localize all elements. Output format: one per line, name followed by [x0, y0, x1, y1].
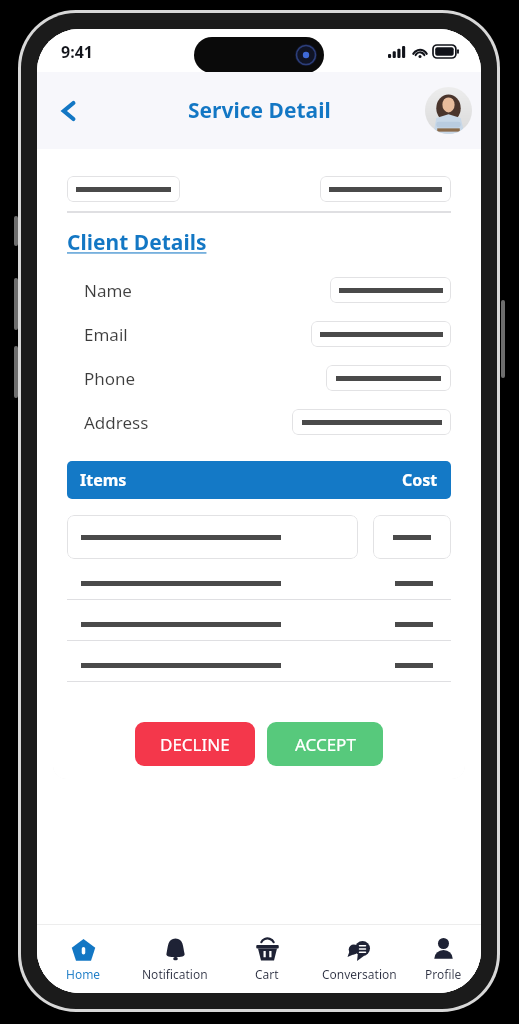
staticText: Home: [66, 966, 101, 982]
button[interactable]: Client Details: [67, 228, 207, 257]
button[interactable]: [67, 663, 451, 668]
button[interactable]: Profile: [405, 925, 481, 993]
staticText: Address: [84, 411, 149, 434]
button[interactable]: [292, 409, 451, 435]
staticText: Phone: [84, 367, 136, 390]
staticText: Name: [84, 279, 132, 302]
button[interactable]: Cart: [221, 925, 313, 993]
staticText: Profile: [425, 966, 462, 982]
staticText: Items: [80, 469, 127, 491]
button[interactable]: [67, 176, 180, 202]
button[interactable]: [311, 321, 451, 347]
button[interactable]: Profile photo: [425, 87, 472, 134]
button[interactable]: [320, 176, 451, 202]
button[interactable]: [326, 365, 451, 391]
staticText: Conversation: [322, 966, 397, 982]
button[interactable]: DECLINE: [135, 722, 255, 766]
staticText: DECLINE: [160, 733, 230, 756]
button[interactable]: Notification: [129, 925, 221, 993]
staticText: 9:41: [61, 41, 93, 63]
button[interactable]: [373, 515, 451, 559]
button[interactable]: ACCEPT: [267, 722, 383, 766]
button[interactable]: [330, 277, 451, 303]
button[interactable]: Conversation: [313, 925, 405, 993]
staticText: Service Detail: [188, 96, 331, 125]
button[interactable]: Back: [47, 89, 91, 133]
button[interactable]: [67, 515, 358, 559]
button[interactable]: [67, 622, 451, 627]
button[interactable]: Items: [67, 461, 451, 499]
staticText: Email: [84, 323, 128, 346]
button[interactable]: [67, 581, 451, 586]
staticText: Cost: [402, 469, 438, 491]
button[interactable]: Home: [37, 925, 129, 993]
staticText: Notification: [142, 966, 208, 982]
staticText: Cart: [255, 966, 279, 982]
staticText: ACCEPT: [295, 733, 356, 756]
